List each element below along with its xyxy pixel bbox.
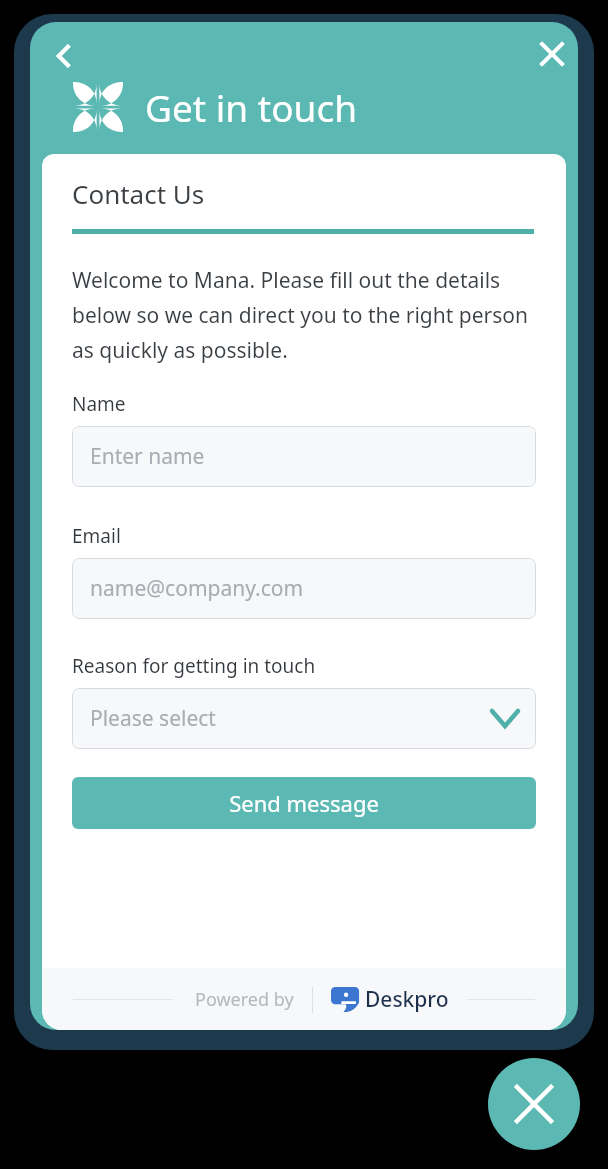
staticText: Enter name [90, 442, 205, 471]
staticText: Powered by [195, 987, 294, 1012]
button[interactable]: Send message [72, 777, 536, 829]
staticText: Contact Us [72, 176, 205, 211]
button[interactable]: Deskpro [331, 985, 449, 1014]
button[interactable]: Enter name [72, 426, 536, 487]
button[interactable]: Back [36, 28, 92, 84]
staticText: Email [72, 523, 121, 549]
staticText: Reason for getting in touch [72, 653, 316, 679]
staticText: Name [72, 391, 126, 417]
button[interactable]: Close chat [488, 1058, 580, 1150]
staticText: name@company.com [90, 574, 304, 603]
staticText: Welcome to Mana. Please fill out the det… [72, 266, 540, 365]
button[interactable]: name@company.com [72, 558, 536, 619]
staticText: Get in touch [145, 82, 358, 132]
button[interactable]: Please select [72, 688, 536, 749]
button[interactable]: Close [526, 28, 578, 80]
staticText: Please select [90, 704, 216, 733]
staticText: Send message [229, 788, 379, 818]
staticText: Deskpro [365, 985, 449, 1014]
